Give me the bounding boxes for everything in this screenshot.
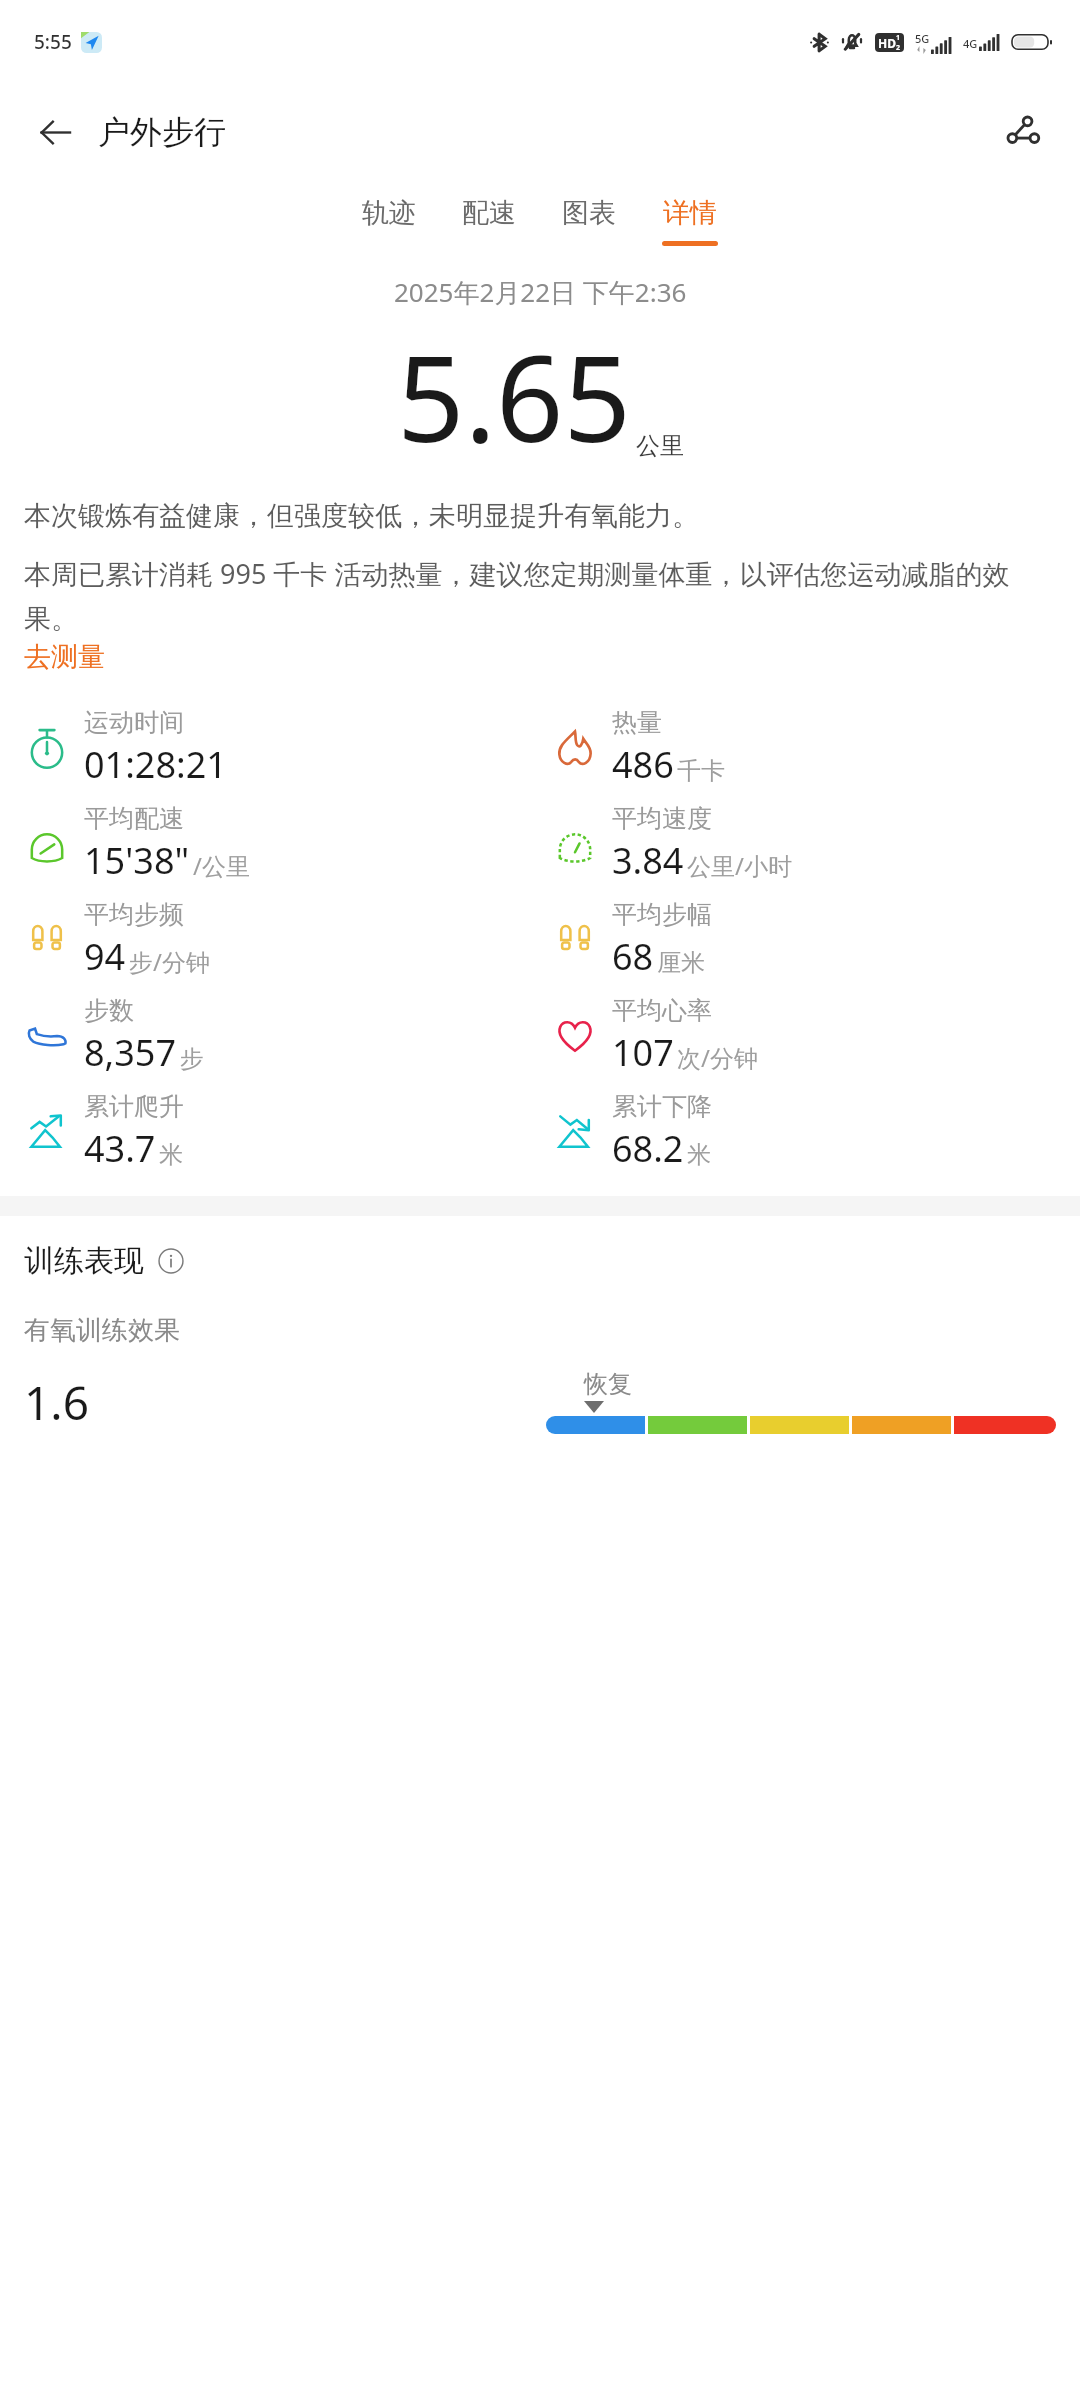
button[interactable]: 平均步幅 bbox=[552, 892, 1080, 988]
staticText: 1 bbox=[896, 33, 901, 43]
button[interactable]: 去测量 bbox=[24, 640, 105, 674]
button[interactable]: 说明 bbox=[154, 1244, 188, 1278]
staticText: 本次锻炼有益健康，但强度较低，未明显提升有氧能力。 bbox=[24, 499, 699, 533]
staticText: 户外步行 bbox=[98, 112, 226, 152]
staticText: 详情 bbox=[663, 196, 717, 230]
staticText: 厘米 bbox=[657, 948, 705, 978]
staticText: 4G bbox=[963, 36, 978, 51]
staticText: 累计爬升 bbox=[84, 1091, 184, 1122]
staticText: 5:55 bbox=[34, 29, 72, 55]
staticText: 486 bbox=[612, 740, 674, 789]
staticText: 恢复 bbox=[584, 1369, 632, 1399]
button[interactable]: 配速 bbox=[439, 190, 539, 252]
button[interactable]: 累计下降 bbox=[552, 1084, 1080, 1180]
staticText: 2 bbox=[896, 43, 901, 52]
staticText: 68.2 bbox=[612, 1124, 684, 1173]
staticText: 平均速度 bbox=[612, 803, 712, 834]
button[interactable]: 步数 bbox=[24, 988, 540, 1084]
staticText: 68 bbox=[612, 932, 654, 981]
staticText: 千卡 bbox=[677, 756, 725, 786]
staticText: 107 bbox=[612, 1028, 674, 1077]
staticText: 图表 bbox=[562, 196, 616, 230]
staticText: 步数 bbox=[84, 995, 134, 1026]
staticText: 米 bbox=[159, 1140, 183, 1170]
staticText: 配速 bbox=[462, 196, 516, 230]
button[interactable]: 热量 bbox=[552, 700, 1080, 796]
staticText: 平均配速 bbox=[84, 803, 184, 834]
staticText: 1.6 bbox=[24, 1371, 89, 1434]
button[interactable]: 分享 bbox=[992, 101, 1054, 163]
staticText: 15'38" bbox=[84, 836, 190, 885]
button[interactable]: 平均步频 bbox=[24, 892, 540, 988]
staticText: 本周已累计消耗 995 千卡 活动热量，建议您定期测量体重，以评估您运动减脂的效… bbox=[24, 555, 1056, 636]
staticText: /公里 bbox=[193, 849, 250, 882]
staticText: 热量 bbox=[612, 707, 662, 738]
staticText: 01:28:21 bbox=[84, 740, 227, 789]
staticText: 平均步幅 bbox=[612, 899, 712, 930]
button[interactable]: 图表 bbox=[539, 190, 639, 252]
staticText: 5G bbox=[915, 31, 930, 46]
staticText: 步 bbox=[180, 1044, 204, 1074]
staticText: 米 bbox=[687, 1140, 711, 1170]
button[interactable]: 轨迹 bbox=[339, 190, 439, 252]
button[interactable]: 运动时间 bbox=[24, 700, 540, 796]
staticText: 步/分钟 bbox=[129, 945, 210, 978]
staticText: 公里 bbox=[636, 431, 684, 461]
button[interactable]: 平均心率 bbox=[552, 988, 1080, 1084]
staticText: 去测量 bbox=[24, 640, 105, 674]
button[interactable]: 平均配速 bbox=[24, 796, 540, 892]
button[interactable]: 累计爬升 bbox=[24, 1084, 540, 1180]
staticText: HD bbox=[878, 35, 896, 51]
staticText: 8,357 bbox=[84, 1028, 177, 1077]
staticText: 公里/小时 bbox=[687, 849, 792, 882]
staticText: 平均步频 bbox=[84, 899, 184, 930]
staticText: 次/分钟 bbox=[677, 1041, 758, 1074]
staticText: 5.65 bbox=[397, 316, 632, 477]
button[interactable]: 返回 bbox=[24, 101, 86, 163]
staticText: 43.7 bbox=[84, 1124, 156, 1173]
staticText: 有氧训练效果 bbox=[24, 1314, 180, 1347]
button[interactable]: 平均速度 bbox=[552, 796, 1080, 892]
staticText: 轨迹 bbox=[362, 196, 416, 230]
staticText: 累计下降 bbox=[612, 1091, 712, 1122]
staticText: 2025年2月22日 下午2:36 bbox=[394, 274, 687, 310]
staticText: 运动时间 bbox=[84, 707, 184, 738]
staticText: 94 bbox=[84, 932, 126, 981]
staticText: 平均心率 bbox=[612, 995, 712, 1026]
button[interactable]: 详情 bbox=[639, 190, 741, 252]
staticText: 训练表现 bbox=[24, 1242, 144, 1280]
staticText: 3.84 bbox=[612, 836, 684, 885]
